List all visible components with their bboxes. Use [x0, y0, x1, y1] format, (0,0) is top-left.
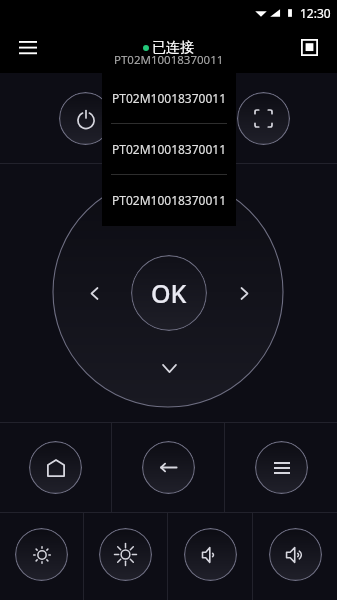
button[interactable]: Menu [255, 441, 308, 494]
button[interactable]: Up [157, 206, 181, 230]
button[interactable]: Left [82, 281, 106, 305]
button[interactable]: Power [59, 92, 112, 145]
button[interactable]: Volume down [184, 528, 237, 581]
staticText: PT02M10018370011 [112, 192, 227, 208]
button[interactable]: Back [142, 441, 195, 494]
button[interactable]: Home [29, 441, 82, 494]
staticText: OK [151, 276, 187, 310]
button[interactable]: Brightness down [15, 528, 68, 581]
button[interactable]: Volume up [269, 528, 322, 581]
button[interactable]: OK [131, 255, 207, 331]
button[interactable]: Menu [9, 29, 46, 66]
staticText: 已连接 [152, 39, 194, 57]
button[interactable]: PT02M10018370011 [102, 73, 236, 123]
button[interactable]: Fullscreen [237, 92, 290, 145]
button[interactable]: Down [157, 356, 181, 380]
button[interactable]: Brightness up [99, 528, 152, 581]
button[interactable]: PT02M10018370011 [102, 124, 236, 174]
button[interactable]: Stop casting [291, 29, 328, 66]
staticText: PT02M10018370011 [112, 90, 227, 106]
staticText: PT02M10018370011 [112, 141, 227, 157]
staticText: PT02M10018370011 [114, 52, 224, 68]
button[interactable]: Right [232, 281, 256, 305]
staticText: 12:30 [300, 5, 331, 21]
button[interactable]: PT02M10018370011 [102, 175, 236, 225]
